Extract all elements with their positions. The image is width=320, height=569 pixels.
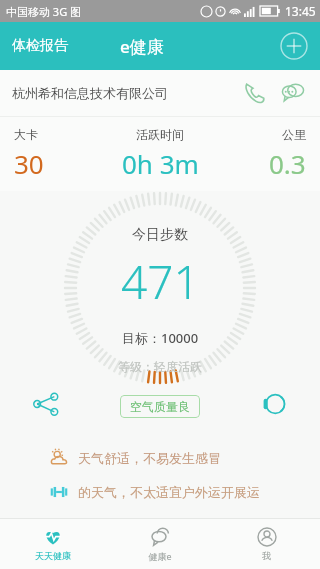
button[interactable]: 空气质量良: [120, 395, 200, 418]
button[interactable]: 大卡: [0, 117, 100, 191]
button[interactable]: Chat: [278, 78, 308, 108]
staticText: e健康: [120, 35, 164, 58]
button[interactable]: 天天健康: [0, 519, 106, 569]
staticText: 体检报告: [12, 37, 68, 55]
staticText: 公里: [282, 127, 306, 142]
staticText: 471: [121, 250, 200, 313]
button[interactable]: Share: [28, 386, 64, 422]
staticText: 的天气，不太适宜户外运开展运: [78, 484, 260, 500]
staticText: 13:45: [285, 3, 316, 19]
staticText: 活跃时间: [136, 127, 184, 142]
staticText: 杭州希和信息技术有限公司: [12, 85, 240, 101]
staticText: 大卡: [14, 127, 38, 142]
staticText: 中国移动 3G 图: [6, 4, 82, 19]
button[interactable]: Add: [278, 30, 310, 62]
staticText: 30: [14, 146, 44, 181]
button[interactable]: 健康e: [106, 519, 213, 569]
staticText: 等级：轻度活跃: [118, 359, 202, 374]
staticText: 目标：10000: [122, 329, 199, 347]
staticText: 健康e: [148, 550, 172, 562]
button[interactable]: Device: [256, 386, 292, 422]
button[interactable]: 活跃时间: [100, 117, 220, 191]
button[interactable]: 我: [213, 519, 320, 569]
staticText: 今日步数: [132, 226, 188, 244]
button[interactable]: 体检报告: [0, 27, 80, 65]
staticText: 我: [262, 550, 271, 561]
staticText: 空气质量良: [130, 399, 190, 414]
staticText: 天天健康: [35, 550, 71, 561]
staticText: 天气舒适，不易发生感冒: [78, 450, 221, 466]
button[interactable]: Call: [240, 78, 270, 108]
staticText: 0.3: [269, 146, 306, 181]
button[interactable]: 公里: [220, 117, 320, 191]
staticText: 0h 3m: [122, 146, 199, 181]
